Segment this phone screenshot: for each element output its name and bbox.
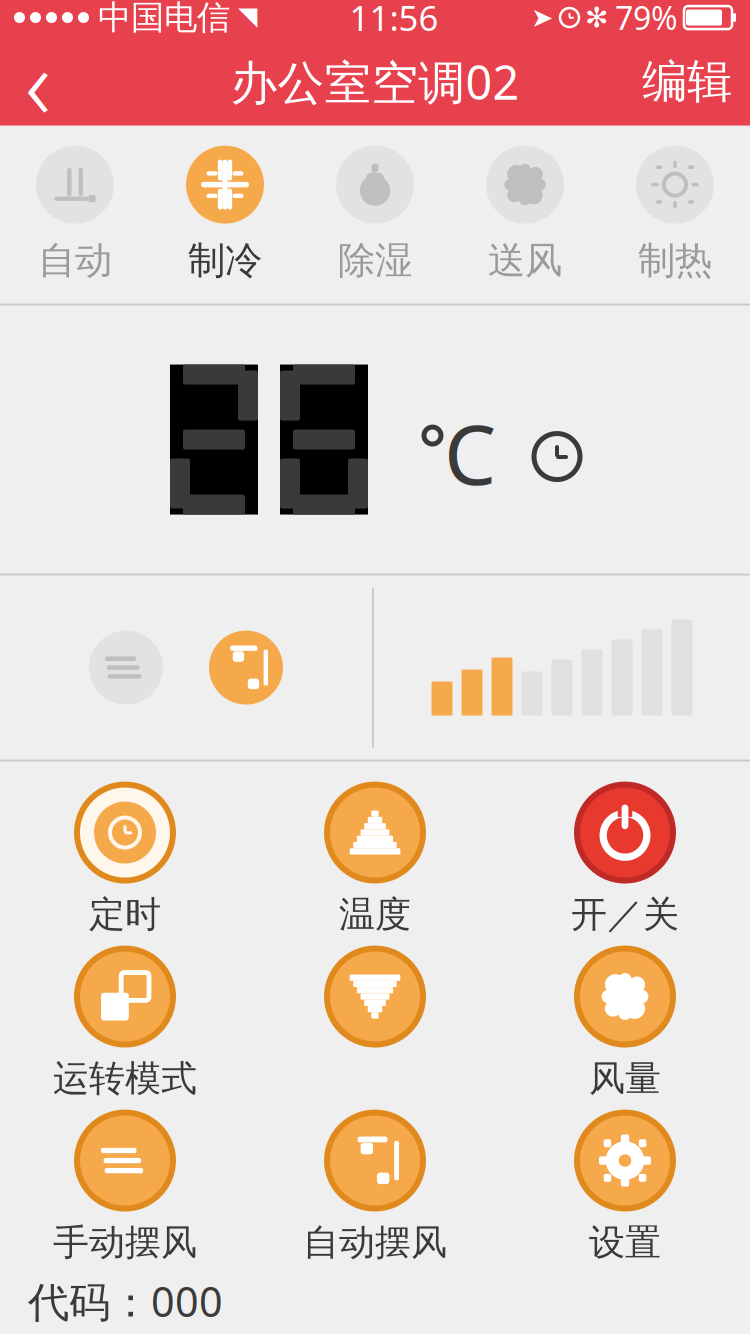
button[interactable]: 手动摆风 [0, 1110, 250, 1260]
staticText: 温度 [339, 892, 411, 937]
button[interactable]: 设置 [500, 1110, 750, 1260]
button[interactable]: 编辑 [624, 38, 750, 126]
button[interactable]: 自动 [0, 146, 150, 283]
button[interactable]: 制冷 [150, 146, 300, 283]
button[interactable]: Fan speed [374, 578, 750, 758]
staticText: 制热 [638, 238, 712, 283]
staticText: 编辑 [642, 54, 732, 109]
staticText: 制冷 [188, 238, 262, 283]
button[interactable]: Back [0, 38, 76, 126]
staticText: 自动 [38, 238, 112, 283]
staticText: ➤ [531, 2, 553, 33]
staticText: 设置 [589, 1220, 661, 1265]
button[interactable]: 温度 [250, 782, 500, 932]
button[interactable]: 风量 [500, 946, 750, 1096]
staticText: 11:56 [349, 0, 438, 40]
button[interactable]: Auto swing [186, 608, 306, 728]
staticText: ✻ [585, 2, 608, 33]
staticText: ◥ [238, 2, 257, 30]
staticText: 开／关 [571, 892, 679, 937]
staticText: 手动摆风 [53, 1220, 197, 1265]
button[interactable]: Manual swing [66, 608, 186, 728]
staticText: 自动摆风 [303, 1220, 447, 1265]
staticText: 风量 [589, 1056, 661, 1101]
button[interactable]: 制热 [600, 146, 750, 283]
staticText: 办公室空调02 [230, 51, 519, 113]
staticText: 代码：000 [28, 1274, 223, 1328]
button[interactable]: 送风 [450, 146, 600, 283]
staticText: ‹ [25, 16, 51, 147]
button[interactable]: 定时 [0, 782, 250, 932]
staticText: 定时 [89, 892, 161, 937]
button[interactable]: 自动摆风 [250, 1110, 500, 1260]
button[interactable]: 除湿 [300, 146, 450, 283]
button[interactable]: 运转模式 [0, 946, 250, 1096]
staticText: C [444, 398, 496, 507]
staticText: 运转模式 [53, 1056, 197, 1101]
staticText: 中国电信 [98, 0, 230, 38]
staticText: 79% [615, 0, 678, 39]
button[interactable]: Decrease temperature [250, 946, 500, 1096]
staticText: 送风 [488, 238, 562, 283]
staticText: 除湿 [338, 238, 412, 283]
button[interactable]: 开／关 [500, 782, 750, 932]
